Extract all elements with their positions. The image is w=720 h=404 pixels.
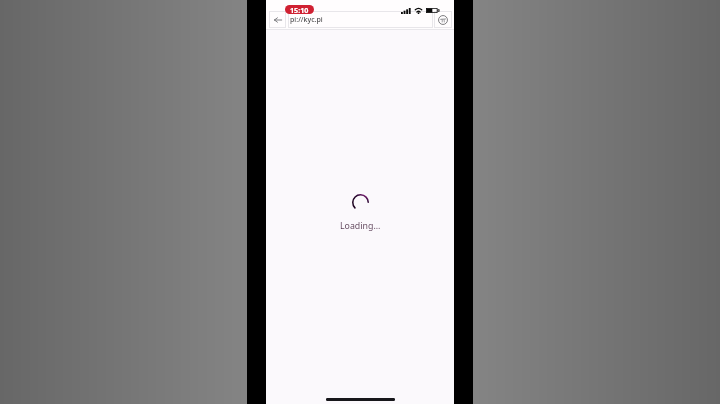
staticText: Loading... (340, 220, 381, 232)
button[interactable]: Pi Browser menu (434, 11, 452, 28)
button[interactable]: pi://kyc.pi (288, 11, 433, 28)
staticText: 15:10 (290, 5, 309, 14)
staticText: pi://kyc.pi (290, 15, 323, 25)
button[interactable]: Back (269, 11, 286, 28)
